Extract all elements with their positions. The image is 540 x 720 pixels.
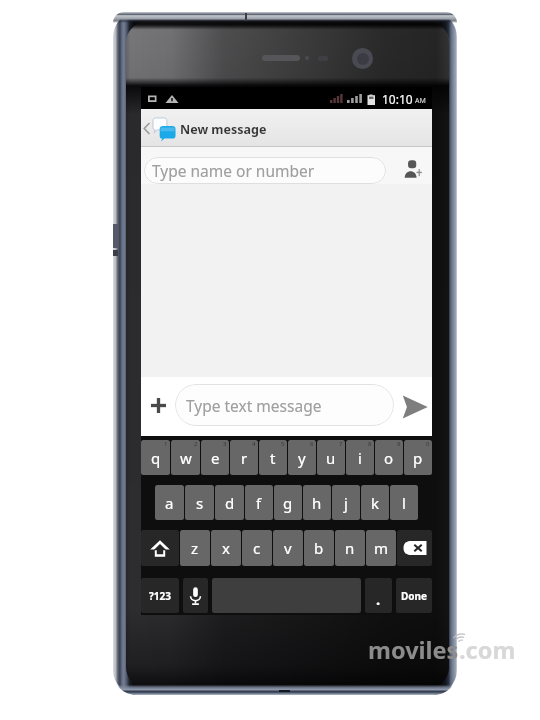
- staticText: 9: [397, 440, 401, 448]
- button[interactable]: backspace: [397, 530, 432, 566]
- button[interactable]: s: [185, 485, 214, 520]
- staticText: .com: [459, 634, 516, 666]
- staticText: 3: [223, 440, 227, 448]
- button[interactable]: a: [155, 485, 184, 520]
- button[interactable]: p: [404, 440, 432, 475]
- button[interactable]: n: [335, 530, 365, 566]
- button[interactable]: u: [317, 440, 345, 475]
- staticText: e: [211, 448, 220, 468]
- button[interactable]: q: [141, 440, 170, 475]
- staticText: 1: [164, 440, 168, 448]
- button[interactable]: Type name or number: [144, 157, 386, 184]
- button[interactable]: i: [346, 440, 374, 475]
- button[interactable]: Add attachment: [144, 391, 172, 419]
- staticText: s: [196, 493, 204, 513]
- staticText: AM: [415, 96, 426, 106]
- staticText: 6: [310, 440, 314, 448]
- button[interactable]: mic: [183, 578, 208, 613]
- button[interactable]: d: [215, 485, 244, 520]
- staticText: x: [222, 538, 230, 558]
- staticText: c: [253, 538, 261, 558]
- button[interactable]: m: [366, 530, 396, 566]
- button[interactable]: l: [390, 485, 418, 520]
- staticText: b: [314, 538, 324, 558]
- button[interactable]: r: [230, 440, 258, 475]
- staticText: New message: [180, 121, 267, 138]
- staticText: 5: [281, 440, 285, 448]
- staticText: 8: [368, 440, 372, 448]
- staticText: d: [225, 493, 235, 513]
- staticText: 2: [194, 440, 198, 448]
- button[interactable]: b: [304, 530, 334, 566]
- button[interactable]: x: [211, 530, 241, 566]
- button[interactable]: e: [201, 440, 229, 475]
- staticText: i: [358, 448, 362, 468]
- staticText: Done: [401, 589, 428, 603]
- button[interactable]: Send: [398, 390, 432, 424]
- button[interactable]: o: [375, 440, 403, 475]
- staticText: f: [256, 493, 262, 513]
- button[interactable]: New message: [141, 109, 432, 147]
- staticText: 0: [426, 440, 430, 448]
- staticText: l: [402, 493, 406, 513]
- button[interactable]: shift: [141, 530, 179, 566]
- staticText: q: [151, 448, 161, 468]
- staticText: h: [312, 493, 322, 513]
- button[interactable]: w: [171, 440, 200, 475]
- staticText: 10:10: [382, 91, 413, 107]
- staticText: p: [413, 448, 423, 468]
- staticText: Type text message: [186, 395, 322, 416]
- button[interactable]: z: [180, 530, 210, 566]
- staticText: k: [371, 493, 380, 513]
- button[interactable]: h: [303, 485, 331, 520]
- button[interactable]: j: [332, 485, 360, 520]
- button[interactable]: ?123: [141, 578, 179, 613]
- staticText: 7: [339, 440, 343, 448]
- staticText: .: [376, 589, 381, 609]
- staticText: g: [283, 493, 293, 513]
- staticText: o: [384, 448, 394, 468]
- button[interactable]: g: [274, 485, 302, 520]
- staticText: m: [374, 538, 389, 558]
- staticText: n: [345, 538, 355, 558]
- staticText: r: [241, 448, 248, 468]
- staticText: z: [191, 538, 199, 558]
- button[interactable]: y: [288, 440, 316, 475]
- staticText: j: [344, 493, 348, 513]
- staticText: ?123: [149, 589, 171, 603]
- staticText: Type name or number: [152, 160, 315, 181]
- button[interactable]: Add contact: [398, 155, 426, 182]
- button[interactable]: v: [273, 530, 303, 566]
- button[interactable]: Done: [396, 578, 432, 613]
- staticText: w: [180, 448, 192, 468]
- button[interactable]: c: [242, 530, 272, 566]
- staticText: a: [165, 493, 174, 513]
- button[interactable]: Type text message: [175, 384, 394, 426]
- button[interactable]: k: [361, 485, 389, 520]
- button[interactable]: period: [365, 578, 392, 613]
- staticText: v: [284, 538, 292, 558]
- staticText: moviles: [368, 634, 459, 666]
- staticText: y: [298, 448, 306, 468]
- staticText: 4: [252, 440, 256, 448]
- button[interactable]: t: [259, 440, 287, 475]
- staticText: t: [270, 448, 276, 468]
- staticText: u: [326, 448, 336, 468]
- button[interactable]: f: [245, 485, 273, 520]
